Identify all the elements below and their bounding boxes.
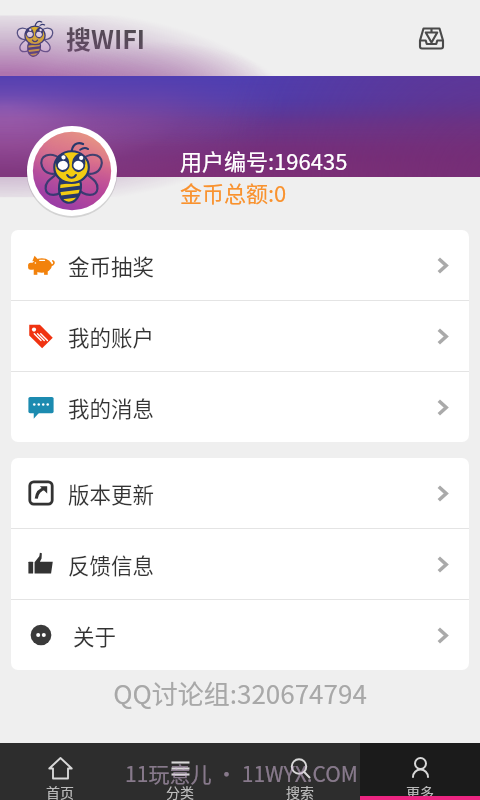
button[interactable]: 更多: [360, 743, 480, 800]
staticText: 版本更新: [68, 478, 155, 509]
staticText: 更多: [406, 782, 434, 800]
button[interactable]: 版本更新: [11, 458, 469, 528]
staticText: 金币抽奖: [68, 250, 155, 281]
button[interactable]: 我的账户: [11, 301, 469, 371]
staticText: 11玩意儿 · 11WYX.COM: [125, 758, 358, 788]
staticText: 我的账户: [68, 321, 155, 352]
staticText: 搜WIFI: [66, 20, 146, 56]
staticText: 金币总额:0: [180, 176, 287, 208]
staticText: 我的消息: [68, 392, 155, 423]
button[interactable]: Avatar: [27, 126, 117, 216]
button[interactable]: 金币抽奖: [11, 230, 469, 300]
button[interactable]: 搜索: [240, 743, 360, 800]
button[interactable]: 关于: [11, 600, 469, 670]
staticText: 分类: [166, 782, 194, 800]
staticText: 用户编号:196435: [180, 144, 348, 176]
staticText: 首页: [46, 782, 74, 800]
staticText: 反馈信息: [68, 549, 155, 580]
button[interactable]: 分类: [120, 743, 240, 800]
staticText: 搜索: [286, 782, 314, 800]
staticText: QQ讨论组:320674794: [0, 674, 480, 712]
staticText: 关于: [73, 620, 117, 651]
button[interactable]: 反馈信息: [11, 529, 469, 599]
button[interactable]: 首页: [0, 743, 120, 800]
button[interactable]: 我的消息: [11, 372, 469, 442]
button[interactable]: Inbox: [409, 16, 453, 60]
